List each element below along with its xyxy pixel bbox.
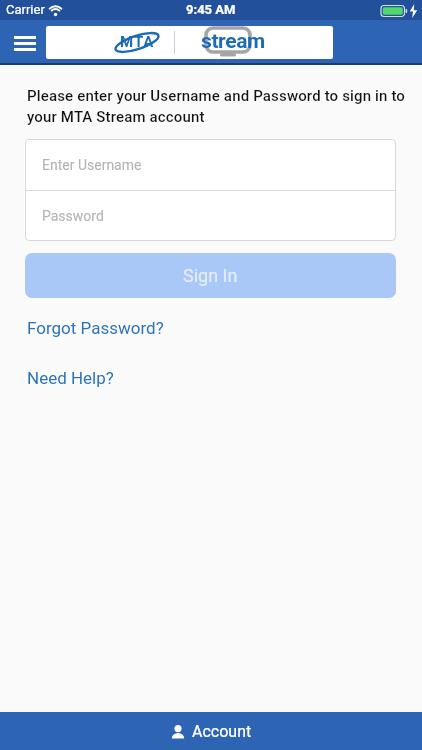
staticText: Please enter your Username and Password … [27,87,406,126]
staticText: Carrier [6,2,45,17]
button[interactable]: Sign In [25,253,396,298]
staticText: 9:45 AM [186,2,236,17]
button[interactable]: Forgot Password? [27,318,164,338]
staticText: stream [201,29,265,54]
button[interactable]: Password [42,190,413,241]
button[interactable] [8,30,42,56]
button[interactable]: Need Help? [27,368,114,388]
staticText: Account [192,722,252,741]
staticText: Need Help? [27,368,114,388]
staticText: Password [42,208,104,224]
button[interactable]: Enter Username [42,139,413,190]
staticText: MTA [120,33,155,51]
staticText: Sign In [183,265,238,286]
button[interactable]: Account [0,712,422,750]
staticText: Enter Username [42,157,142,173]
staticText: Forgot Password? [27,318,164,338]
